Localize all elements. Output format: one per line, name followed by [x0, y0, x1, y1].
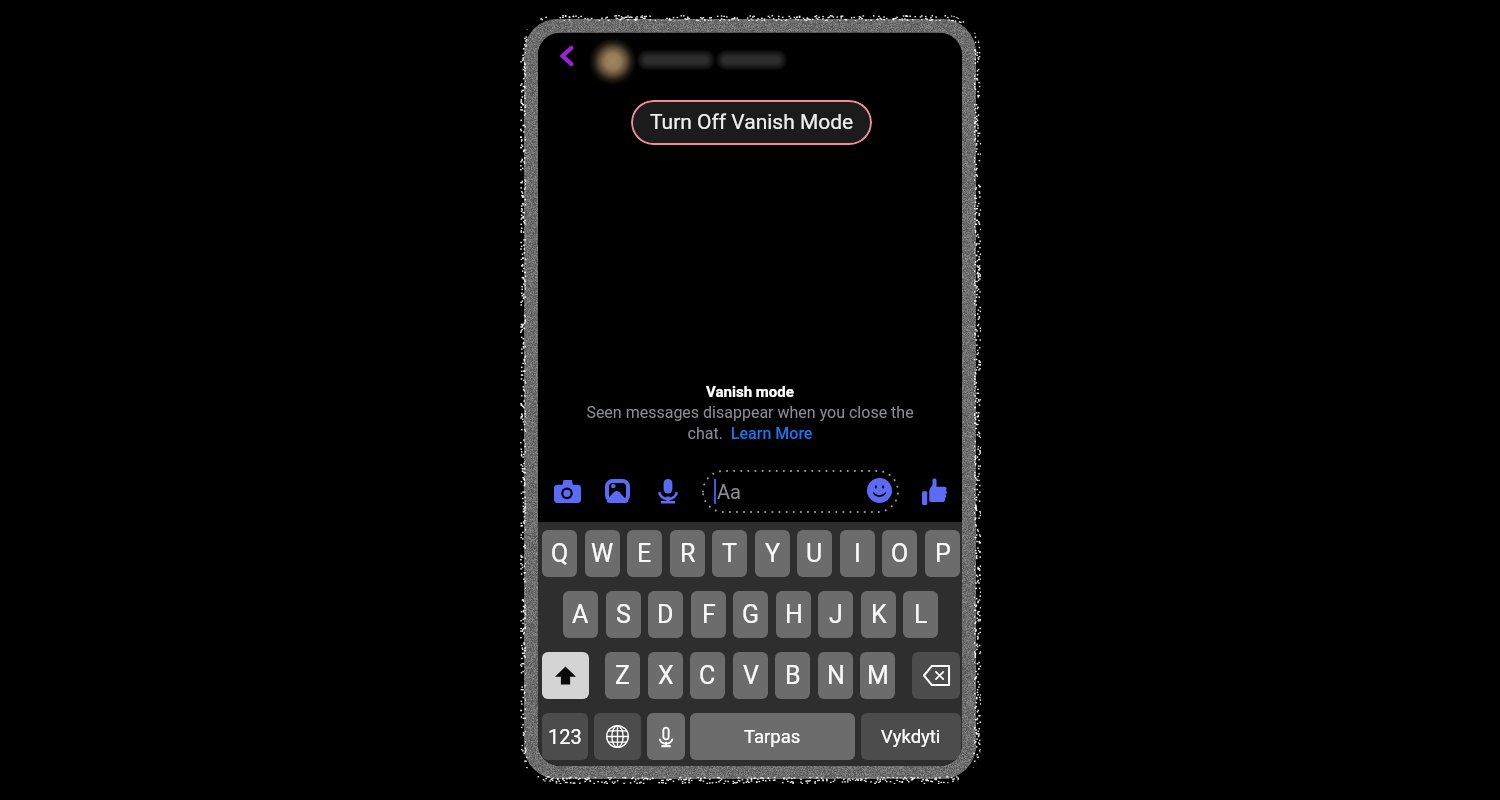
staticText: Aa	[717, 480, 741, 503]
button[interactable]: P	[925, 530, 960, 577]
staticText: B	[785, 661, 801, 690]
button[interactable]: Turn Off Vanish Mode	[631, 100, 872, 145]
staticText: Tarpas	[744, 726, 801, 748]
staticText: J	[829, 600, 843, 629]
staticText: G	[742, 600, 760, 629]
button[interactable]: Emoji	[867, 478, 892, 503]
staticText: Seen messages disappear when you close t…	[586, 403, 914, 443]
button[interactable]: Tarpas	[690, 713, 855, 760]
staticText: P	[935, 539, 951, 568]
button[interactable]: G	[733, 591, 768, 638]
button[interactable]: S	[606, 591, 641, 638]
staticText: Turn Off Vanish Mode	[650, 110, 854, 135]
button[interactable]: Q	[542, 530, 577, 577]
staticText: E	[637, 539, 652, 568]
button[interactable]: D	[648, 591, 683, 638]
staticText: U	[806, 539, 823, 568]
staticText: S	[616, 600, 631, 629]
button[interactable]: B	[775, 652, 810, 699]
button[interactable]: Voice message	[658, 469, 678, 513]
staticText: T	[722, 539, 737, 568]
button[interactable]: Back	[554, 43, 580, 69]
staticText: R	[680, 539, 696, 568]
button[interactable]: U	[797, 530, 832, 577]
staticText: V	[743, 661, 759, 690]
staticText: Y	[765, 539, 781, 568]
button[interactable]: F	[691, 591, 726, 638]
staticText: M	[867, 661, 889, 690]
staticText: K	[871, 600, 887, 629]
staticText: C	[699, 661, 716, 690]
button[interactable]: Camera	[554, 469, 581, 513]
button[interactable]: Numbers	[542, 713, 588, 760]
staticText: X	[658, 661, 674, 690]
staticText: Z	[615, 661, 630, 690]
staticText: L	[914, 600, 928, 629]
button[interactable]: Open chat profile	[588, 33, 848, 94]
button[interactable]: Change language	[594, 713, 641, 760]
button[interactable]: T	[712, 530, 747, 577]
button[interactable]: J	[818, 591, 853, 638]
staticText: D	[657, 600, 674, 629]
button[interactable]: R	[670, 530, 705, 577]
button[interactable]: Photos	[605, 469, 630, 513]
button[interactable]: Vykdyti	[861, 713, 961, 760]
staticText: F	[702, 600, 716, 629]
staticText: H	[785, 600, 803, 629]
button[interactable]: Backspace	[912, 652, 960, 699]
staticText: A	[572, 600, 589, 629]
button[interactable]: V	[733, 652, 768, 699]
button[interactable]: E	[627, 530, 662, 577]
button[interactable]: X	[648, 652, 683, 699]
staticText: O	[891, 539, 909, 568]
staticText: I	[854, 539, 861, 568]
staticText: Q	[551, 539, 569, 568]
button[interactable]: H	[776, 591, 811, 638]
button[interactable]: Z	[605, 652, 640, 699]
button[interactable]: N	[818, 652, 853, 699]
button[interactable]: Shift	[542, 652, 589, 699]
button[interactable]: I	[840, 530, 875, 577]
staticText: 123	[548, 725, 582, 748]
button[interactable]: Like	[922, 469, 947, 513]
button[interactable]: C	[690, 652, 725, 699]
button[interactable]: Voice input	[647, 713, 685, 760]
button[interactable]: Y	[755, 530, 790, 577]
staticText: Vanish mode	[538, 383, 962, 401]
staticText: N	[827, 661, 845, 690]
button[interactable]: W	[585, 530, 620, 577]
button[interactable]: L	[903, 591, 938, 638]
button[interactable]: K	[861, 591, 896, 638]
staticText: W	[591, 539, 614, 568]
button[interactable]: A	[563, 591, 598, 638]
button[interactable]: M	[860, 652, 895, 699]
button[interactable]: Aa	[703, 471, 898, 512]
staticText: Vykdyti	[881, 726, 941, 748]
button[interactable]: O	[882, 530, 917, 577]
